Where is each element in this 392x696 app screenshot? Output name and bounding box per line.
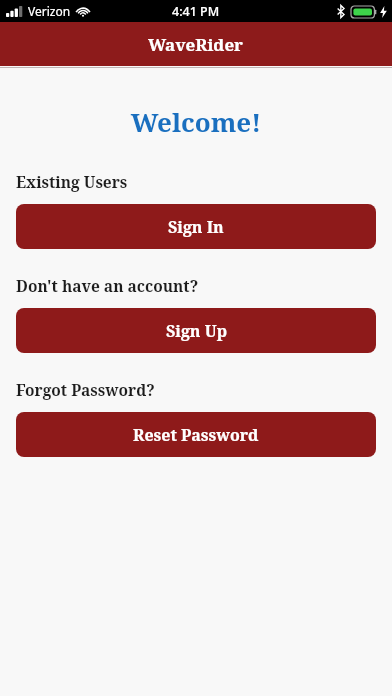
staticText: Sign Up (166, 320, 227, 342)
staticText: Sign In (168, 216, 224, 238)
staticText: Forgot Password? (16, 379, 155, 400)
button[interactable]: Sign Up (16, 308, 376, 353)
staticText: Verizon (28, 3, 71, 19)
button[interactable]: Reset Password (16, 412, 376, 457)
staticText: Existing Users (16, 171, 128, 192)
staticText: Welcome! (0, 104, 392, 139)
staticText: 4:41 PM (172, 3, 220, 20)
staticText: Don't have an account? (16, 275, 199, 296)
button[interactable]: Sign In (16, 204, 376, 249)
staticText: Reset Password (133, 424, 259, 446)
staticText: WaveRider (148, 33, 244, 56)
